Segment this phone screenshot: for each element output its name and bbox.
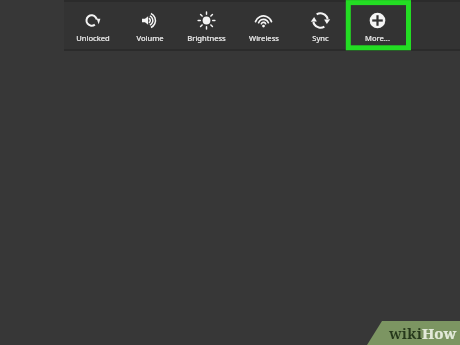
- staticText: How: [422, 323, 457, 343]
- button[interactable]: Sync: [292, 0, 349, 51]
- staticText: Wireless: [249, 33, 279, 43]
- staticText: Sync: [312, 33, 329, 43]
- button[interactable]: More options: [349, 0, 406, 51]
- staticText: More...: [365, 33, 390, 43]
- button[interactable]: Volume: [121, 0, 178, 51]
- button[interactable]: Wireless: [235, 0, 292, 51]
- staticText: wiki: [389, 323, 422, 343]
- staticText: Unlocked: [76, 33, 110, 43]
- staticText: Volume: [136, 33, 164, 43]
- staticText: Brightness: [187, 33, 226, 43]
- button[interactable]: Brightness: [178, 0, 235, 51]
- button[interactable]: Rotation unlocked: [64, 0, 121, 51]
